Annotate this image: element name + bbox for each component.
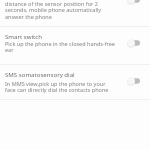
staticText: SMS somatosensory dial xyxy=(5,70,75,78)
button[interactable]: Toggle switch xyxy=(127,77,140,85)
staticText: Pick up the phone in the closed hands-fr… xyxy=(5,40,115,54)
staticText: Smart switch xyxy=(5,32,42,40)
button[interactable]: distance of the sensor position for 2 se… xyxy=(0,0,150,26)
button[interactable]: Smart switch xyxy=(0,27,150,64)
button[interactable]: Toggle switch xyxy=(127,39,140,47)
button[interactable]: Toggle switch xyxy=(127,0,140,4)
button[interactable]: SMS somatosensory dial xyxy=(0,65,150,99)
staticText: In MMS view,pick up the phone to your fa… xyxy=(5,80,115,94)
staticText: distance of the sensor position for 2 se… xyxy=(5,0,115,21)
